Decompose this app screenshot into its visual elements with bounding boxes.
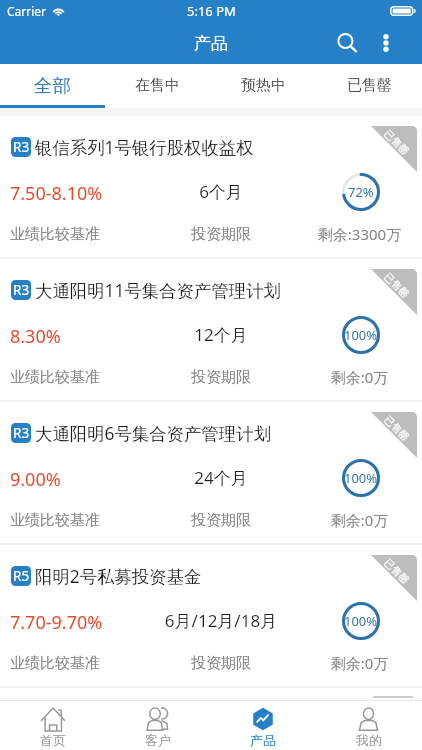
staticText: 8.30% [10,324,61,349]
button[interactable]: 我的 [316,701,422,750]
staticText: Carrier [7,3,47,19]
button[interactable]: 产品 [210,701,316,750]
staticText: 投资期限 [151,225,291,244]
staticText: 业绩比较基准 [10,511,100,530]
staticText: 产品 [250,732,276,748]
staticText: R3 [13,424,30,442]
staticText: 首页 [40,732,66,748]
button[interactable]: 已售罄 [0,116,422,257]
staticText: 24个月 [151,466,291,489]
staticText: 投资期限 [151,511,291,530]
button[interactable]: 已售罄 [0,402,422,543]
staticText: 72% [348,183,374,201]
button[interactable]: More options [366,22,406,64]
staticText: 已售罄 [381,556,412,587]
staticText: 12个月 [151,323,291,346]
staticText: 100% [344,469,378,487]
staticText: 已售罄 [381,270,412,301]
button[interactable]: Search [326,22,368,64]
staticText: 9.00% [10,467,61,492]
staticText: 投资期限 [151,654,291,673]
button[interactable]: 客户 [105,701,210,750]
button[interactable]: 在售中 [105,64,210,108]
staticText: 在售中 [135,76,180,95]
button[interactable]: 已售罄 [0,259,422,400]
staticText: 全部 [34,74,71,97]
staticText: 7.50-8.10% [10,181,103,206]
staticText: 阳明2号私募投资基金 [35,564,202,588]
staticText: 6月/12月/18月 [151,609,291,632]
button[interactable]: 首页 [0,701,105,750]
staticText: 剩余:0万 [289,367,422,387]
staticText: 我的 [356,732,382,748]
staticText: R3 [13,138,30,156]
staticText: 大通阳明11号集合资产管理计划 [35,278,281,302]
staticText: 投资期限 [151,368,291,387]
staticText: 5:16 PM [187,2,236,20]
staticText: R5 [13,567,30,585]
button[interactable]: 预热中 [210,64,316,108]
staticText: 剩余:0万 [289,510,422,530]
button[interactable]: 已售罄 [316,64,422,108]
staticText: 剩余:3300万 [289,224,422,244]
staticText: 7.70-9.70% [10,610,103,635]
staticText: 100% [344,612,378,630]
staticText: 产品 [194,33,228,54]
staticText: 业绩比较基准 [10,654,100,673]
staticText: 业绩比较基准 [10,368,100,387]
button[interactable]: 已售罄 [0,545,422,686]
staticText: 100% [344,326,378,344]
staticText: 客户 [145,732,171,748]
button[interactable]: 全部 [0,64,105,108]
staticText: 剩余:0万 [289,653,422,673]
staticText: 大通阳明6号集合资产管理计划 [35,421,272,445]
staticText: 业绩比较基准 [10,225,100,244]
staticText: 6个月 [151,180,291,203]
staticText: 预热中 [241,76,286,95]
staticText: 已售罄 [381,413,412,444]
staticText: 银信系列1号银行股权收益权 [35,135,254,159]
staticText: 已售罄 [381,127,412,158]
staticText: 已售罄 [347,76,392,95]
staticText: R3 [13,281,30,299]
